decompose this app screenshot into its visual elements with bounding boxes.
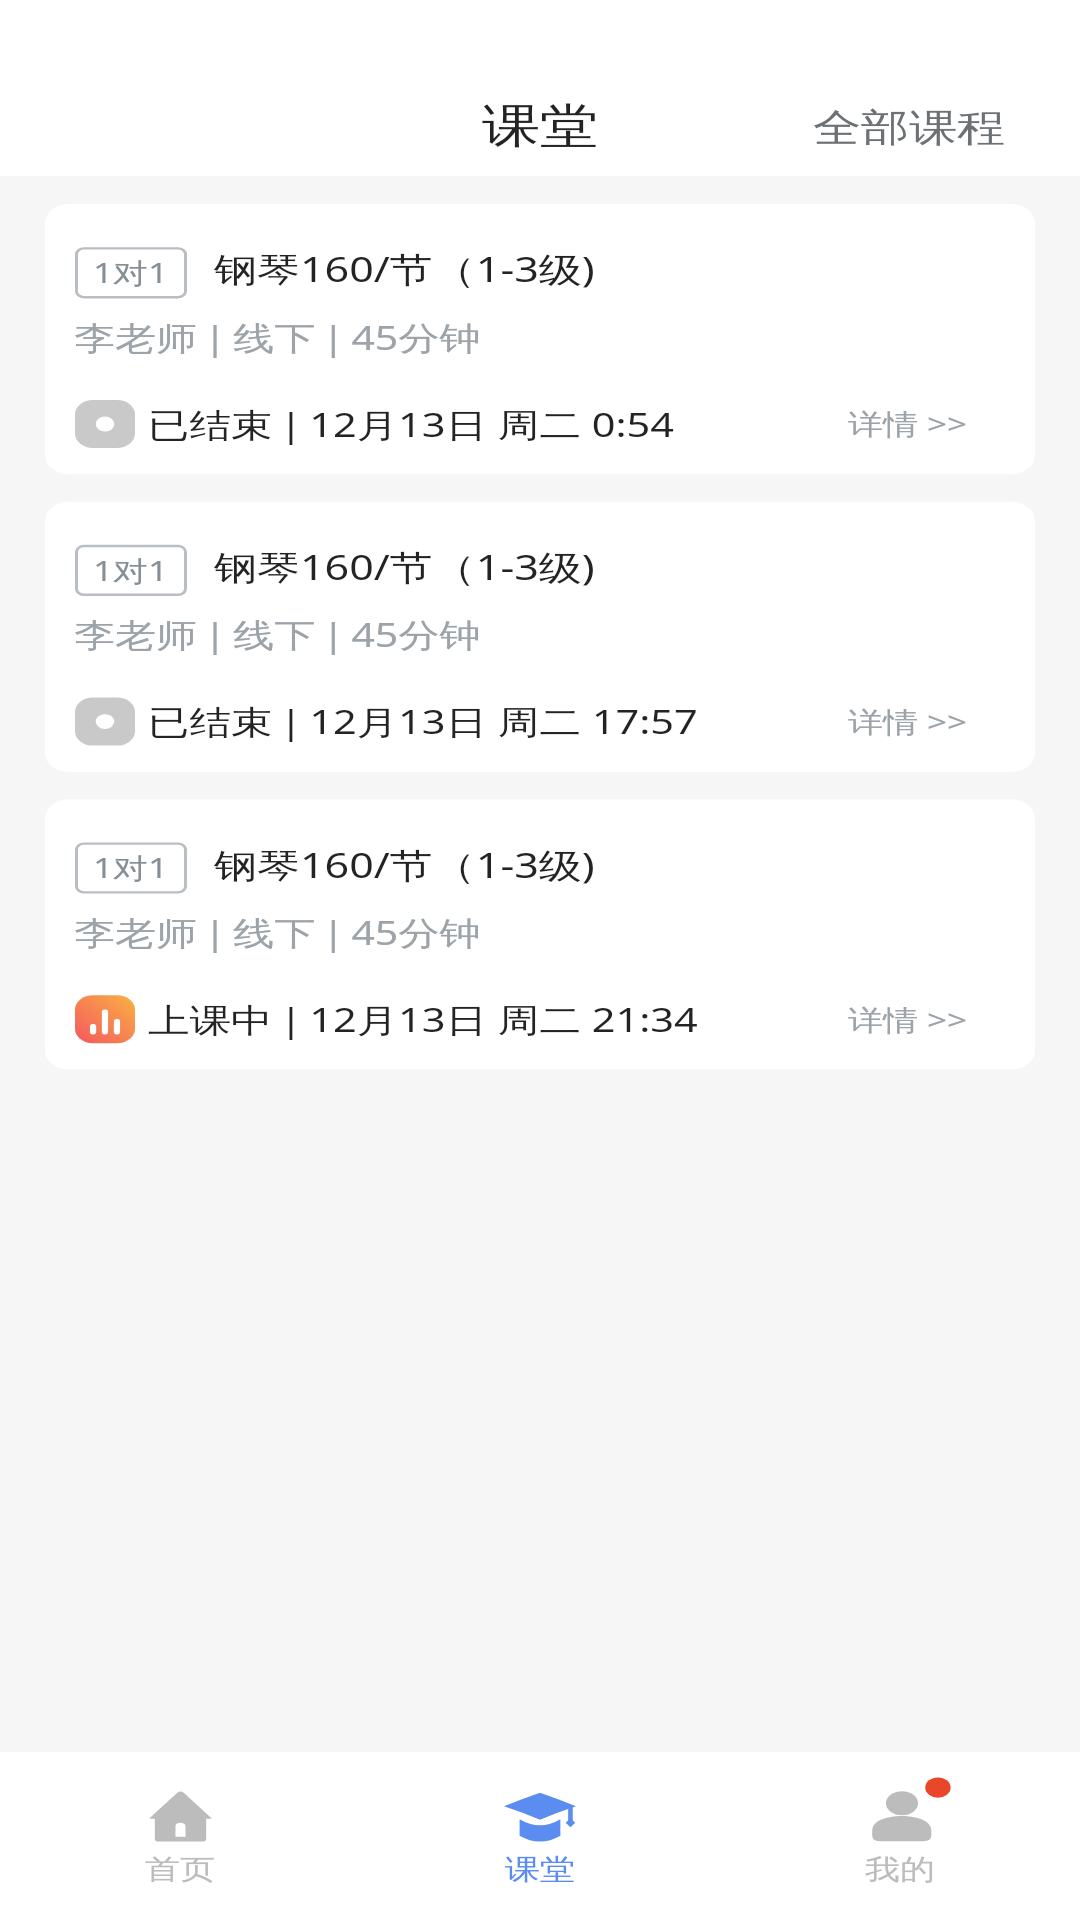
- staticText: 课堂: [505, 1852, 575, 1887]
- staticText: 课堂: [482, 97, 598, 155]
- staticText: 全部课程: [813, 104, 1005, 152]
- button[interactable]: 1对1: [45, 502, 1035, 772]
- staticText: 已结束 | 12月13日 周二 0:54: [148, 402, 675, 447]
- staticText: 详情 >>: [848, 702, 968, 741]
- button[interactable]: 全部课程: [813, 104, 1005, 152]
- staticText: 钢琴160/节（1-3级): [214, 543, 595, 590]
- other: 首页: [148, 1791, 213, 1842]
- button[interactable]: 1对1: [45, 799, 1035, 1070]
- staticText: 首页: [145, 1852, 215, 1887]
- staticText: 钢琴160/节（1-3级): [214, 246, 595, 293]
- button[interactable]: 我的: [720, 1752, 1080, 1920]
- other: 课堂: [504, 1793, 576, 1842]
- staticText: 1对1: [93, 254, 169, 292]
- staticText: 1对1: [93, 551, 169, 590]
- staticText: 钢琴160/节（1-3级): [214, 841, 595, 888]
- other: 我的: [851, 1778, 950, 1842]
- button[interactable]: 首页: [0, 1752, 360, 1920]
- staticText: 我的: [865, 1852, 935, 1887]
- button[interactable]: 详情 >>: [848, 405, 968, 443]
- staticText: 李老师 | 线下 | 45分钟: [74, 314, 481, 359]
- staticText: 已结束 | 12月13日 周二 17:57: [148, 699, 698, 745]
- staticText: 1对1: [93, 849, 169, 887]
- staticText: 李老师 | 线下 | 45分钟: [74, 612, 481, 657]
- staticText: 详情 >>: [848, 405, 968, 443]
- button[interactable]: 详情 >>: [848, 702, 968, 741]
- staticText: 详情 >>: [848, 1000, 968, 1038]
- button[interactable]: 1对1: [45, 204, 1035, 474]
- staticText: 李老师 | 线下 | 45分钟: [74, 910, 481, 954]
- button[interactable]: 课堂: [360, 1752, 720, 1920]
- button[interactable]: 详情 >>: [848, 1000, 968, 1038]
- staticText: 上课中 | 12月13日 周二 21:34: [148, 997, 698, 1042]
